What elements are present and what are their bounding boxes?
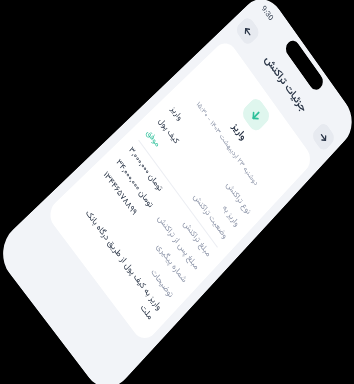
staticText: نوع تراکنش: [111, 150, 147, 163]
button[interactable]: ۳,۰۰۰,۰۰۰ تومان: [21, 206, 147, 223]
staticText: ۳,۰۰۰,۰۰۰ تومان: [21, 208, 70, 221]
staticText: ۳۴,۰۰۰,۰۰۰ تومان: [21, 225, 75, 238]
button[interactable]: موفق: [21, 182, 147, 199]
staticText: مبلغ تراکنش: [107, 208, 147, 221]
staticText: وضعیت تراکنش: [96, 184, 147, 197]
staticText: واریز به: [124, 167, 147, 180]
button[interactable]: ۱۳۴۴۶۵۷۸۸۹۹: [21, 240, 147, 257]
staticText: واریز به کیف پول از طریق درگاه بانک ملت: [21, 277, 147, 301]
button[interactable]: ۳۴,۰۰۰,۰۰۰ تومان: [21, 223, 147, 240]
staticText: دوشنبه ۲۳ اردیبهشت ۱۴۰۳ - ۱۵:۳۰: [35, 127, 133, 138]
staticText: توضیحات: [21, 261, 147, 274]
button[interactable]: کیف پول: [21, 165, 147, 182]
staticText: شماره پیگیری: [104, 242, 147, 255]
staticText: مبلغ پس از تراکنش: [86, 225, 147, 238]
button[interactable]: واریز: [21, 148, 147, 165]
